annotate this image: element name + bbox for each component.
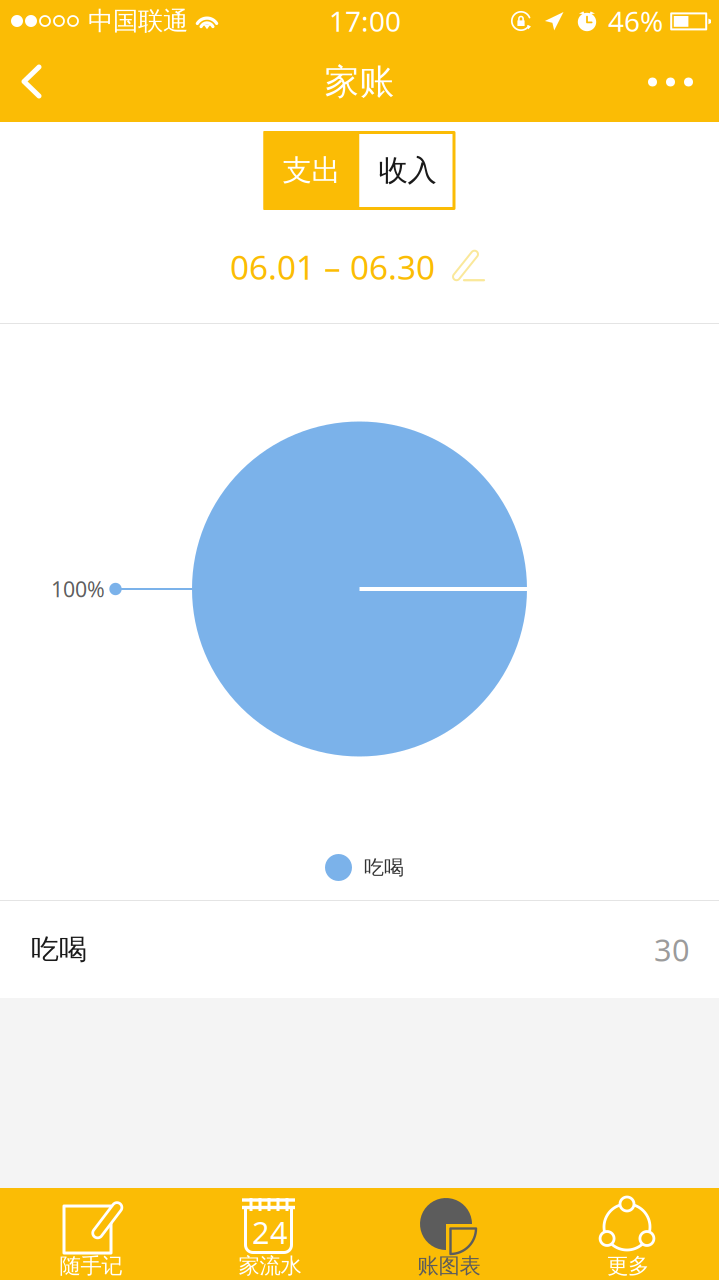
button[interactable]: More options: [624, 42, 719, 122]
staticText: 24: [252, 1211, 288, 1253]
staticText: 家流水: [238, 1253, 301, 1279]
button[interactable]: Back: [0, 42, 65, 122]
button[interactable]: 随手记: [1, 1188, 180, 1280]
staticText: 家账: [324, 60, 394, 104]
staticText: 吃喝: [31, 932, 87, 967]
button[interactable]: 24: [180, 1188, 359, 1280]
staticText: 中国联通: [88, 5, 188, 37]
button[interactable]: 06.01 – 06.30: [230, 232, 489, 301]
button[interactable]: 收入: [359, 131, 455, 210]
staticText: 17:00: [329, 2, 401, 40]
staticText: 46%: [608, 2, 663, 40]
button[interactable]: 更多: [538, 1188, 717, 1280]
staticText: 100%: [51, 574, 105, 604]
staticText: 吃喝: [364, 855, 404, 880]
staticText: 随手记: [59, 1253, 122, 1279]
button[interactable]: 支出: [263, 131, 359, 210]
staticText: 账图表: [417, 1253, 480, 1279]
button[interactable]: 账图表: [359, 1188, 538, 1280]
staticText: 06.01 – 06.30: [230, 244, 435, 289]
staticText: 收入: [378, 152, 436, 189]
staticText: 更多: [607, 1253, 649, 1279]
button[interactable]: 吃喝: [0, 901, 719, 998]
staticText: 支出: [282, 152, 340, 189]
staticText: 30: [654, 929, 690, 970]
